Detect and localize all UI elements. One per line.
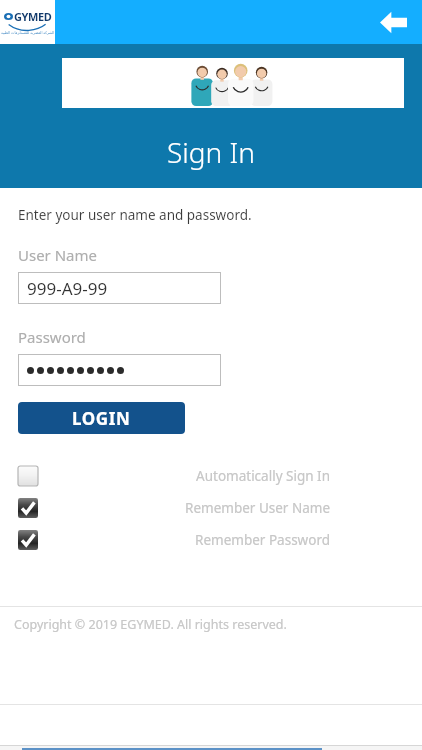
staticText: Sign In: [167, 133, 255, 171]
staticText: Copyright © 2019 EGYMED. All rights rese…: [14, 616, 287, 633]
staticText: Enter your user name and password.: [18, 206, 252, 224]
button[interactable]: LOGIN: [18, 402, 185, 434]
staticText: Remember User Name: [38, 499, 330, 517]
button[interactable]: 999-A9-99: [18, 272, 221, 304]
staticText: 999-A9-99: [27, 277, 108, 300]
button[interactable]: [18, 354, 221, 386]
staticText: Automatically Sign In: [38, 467, 330, 485]
staticText: LOGIN: [72, 407, 131, 430]
button[interactable]: Remember User Name: [0, 498, 422, 518]
staticText: الشركة المصرية للمستلزمات الطبية: [1, 30, 55, 35]
button[interactable]: Remember Password: [0, 530, 422, 550]
staticText: Password: [18, 327, 86, 347]
button[interactable]: Automatically Sign In: [0, 466, 422, 486]
staticText: Remember Password: [38, 531, 330, 549]
staticText: GYMED: [14, 9, 52, 24]
staticText: User Name: [18, 245, 98, 265]
button[interactable]: Back: [374, 3, 412, 41]
